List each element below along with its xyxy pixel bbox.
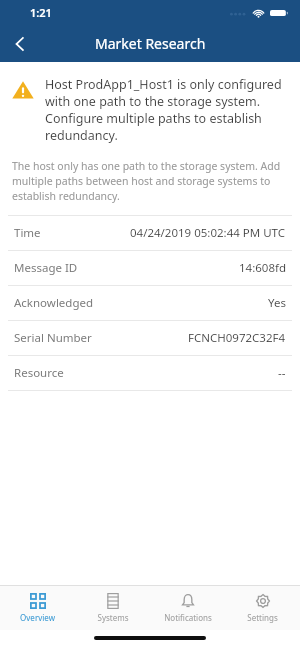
button[interactable]: Notifications <box>150 586 225 630</box>
staticText: 1:21 <box>30 5 52 20</box>
staticText: 14:608fd <box>239 260 286 276</box>
staticText: 04/24/2019 05:02:44 PM UTC <box>130 225 286 241</box>
button[interactable]: Acknowledged <box>0 286 300 320</box>
staticText: FCNCH0972C32F4 <box>188 330 286 346</box>
staticText: -- <box>278 365 286 381</box>
staticText: Notifications <box>164 612 212 623</box>
button[interactable]: Overview <box>0 586 75 630</box>
button[interactable]: Back <box>0 25 40 62</box>
button[interactable]: Message ID <box>0 251 300 285</box>
staticText: Resource <box>14 365 64 381</box>
button[interactable]: Resource <box>0 356 300 390</box>
staticText: Overview <box>20 612 55 623</box>
staticText: Settings <box>247 612 278 623</box>
button[interactable]: Systems <box>75 586 150 630</box>
button[interactable]: Settings <box>225 586 300 630</box>
staticText: Yes <box>268 295 286 311</box>
staticText: Market Research <box>95 34 206 53</box>
staticText: Host ProdApp1_Host1 is only configured w… <box>45 76 286 144</box>
staticText: Serial Number <box>14 330 92 346</box>
staticText: Systems <box>97 612 129 623</box>
button[interactable]: Serial Number <box>0 321 300 355</box>
staticText: Time <box>14 225 41 241</box>
staticText: Message ID <box>14 260 78 276</box>
button[interactable]: Time <box>0 216 300 250</box>
staticText: Acknowledged <box>14 295 94 311</box>
staticText: The host only has one path to the storag… <box>12 159 284 203</box>
